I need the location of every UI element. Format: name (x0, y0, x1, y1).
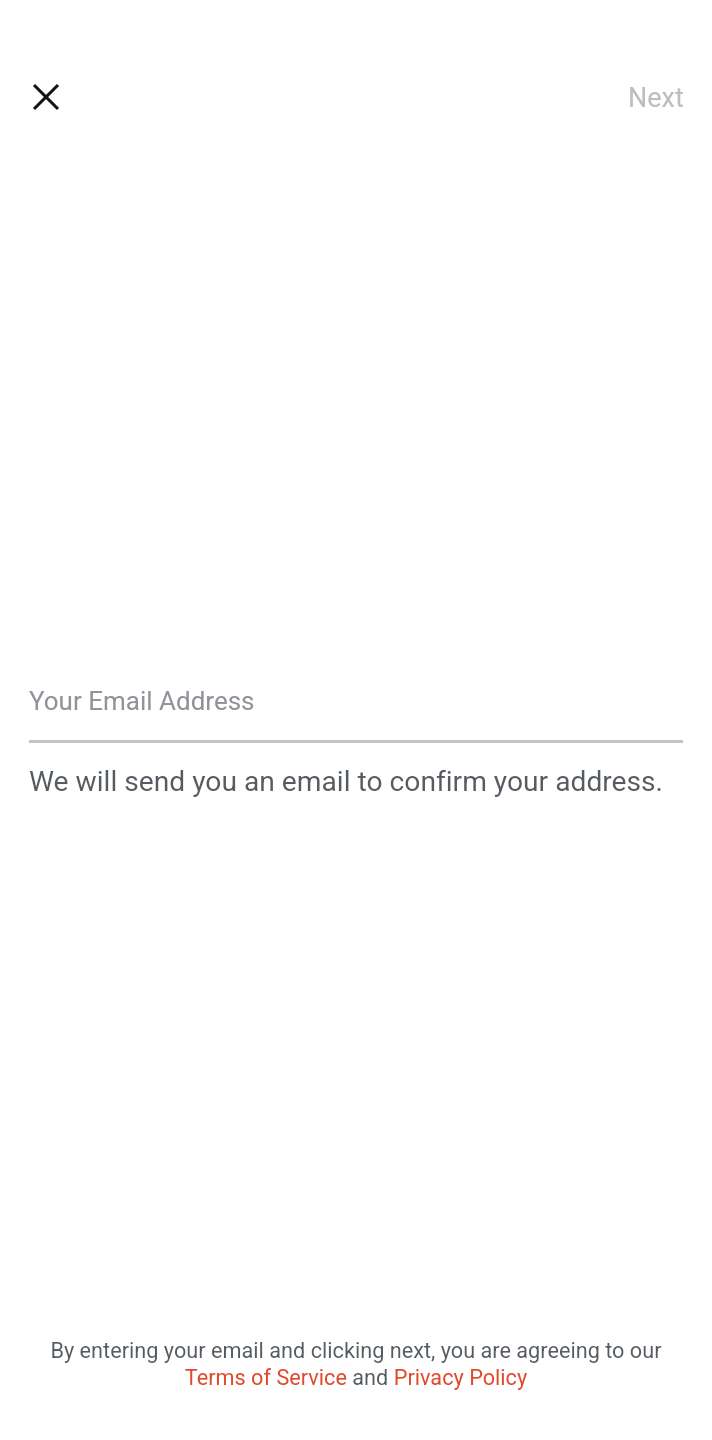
staticText: Next (628, 82, 684, 114)
staticText: By entering your email and clicking next… (24, 1338, 688, 1390)
staticText: We will send you an email to confirm you… (29, 765, 664, 798)
staticText: Your Email Address (29, 686, 255, 716)
button[interactable]: Close (14, 65, 78, 129)
button[interactable]: Next (612, 66, 700, 130)
button[interactable]: Terms of Service (186, 1363, 349, 1389)
button[interactable]: Privacy Policy (388, 1363, 527, 1389)
button[interactable]: Your Email Address (29, 686, 683, 743)
